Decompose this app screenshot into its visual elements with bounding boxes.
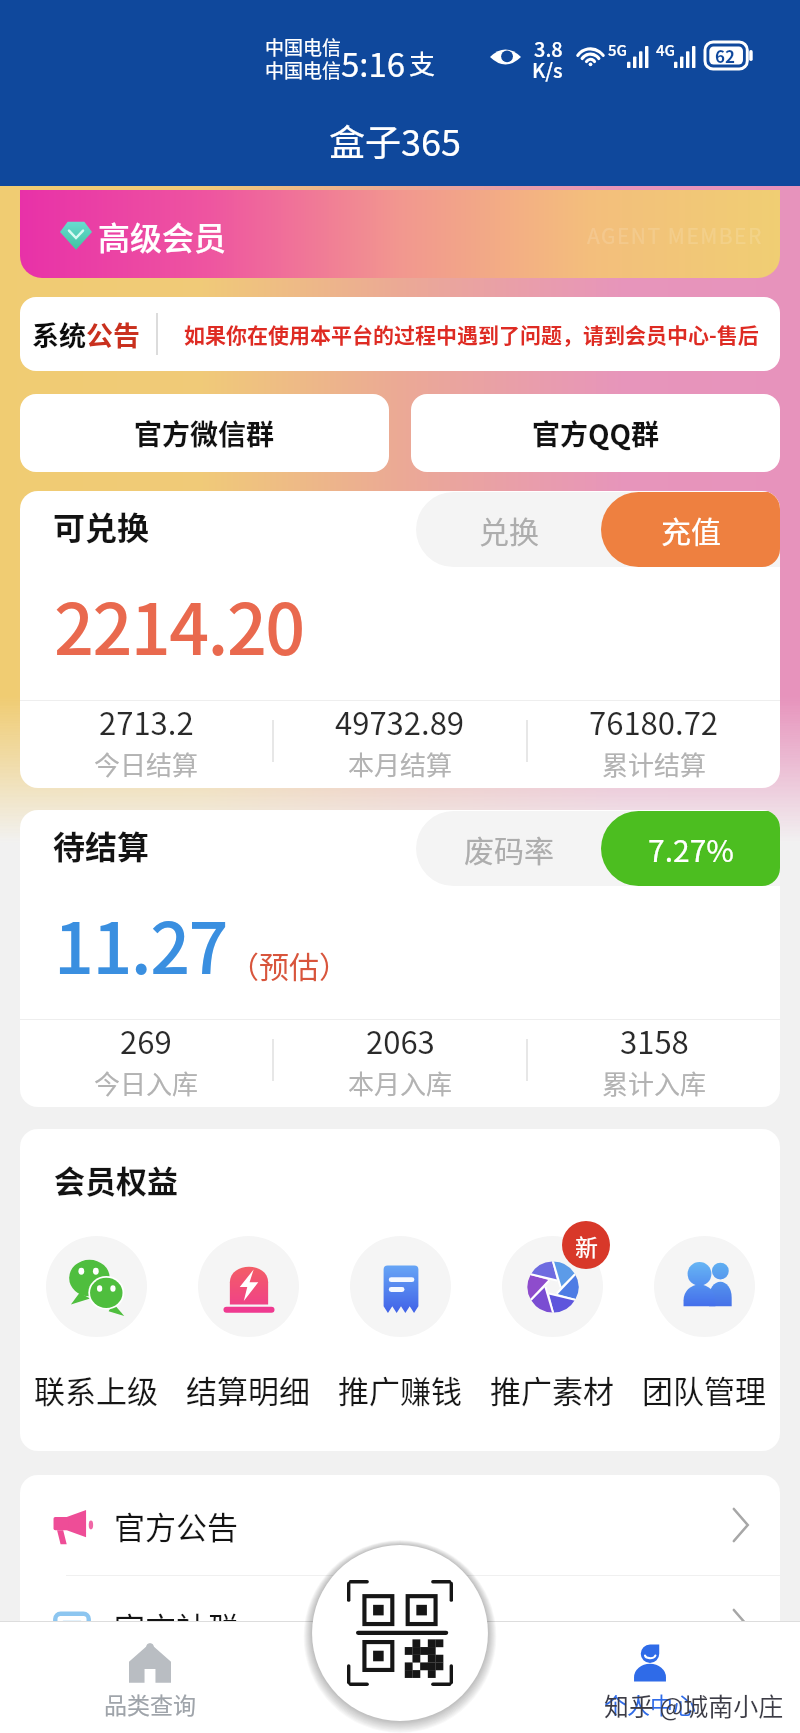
staticText: K/s bbox=[532, 55, 563, 84]
button[interactable]: 充值 bbox=[601, 492, 780, 567]
button[interactable]: 官方公告 bbox=[20, 1475, 780, 1575]
staticText: 充值 bbox=[661, 508, 721, 551]
staticText: 待结算 bbox=[53, 822, 150, 868]
staticText: 官方微信群 bbox=[134, 413, 275, 454]
staticText: AGENT MEMBER bbox=[587, 220, 763, 250]
staticText: 推广赚钱 bbox=[338, 1367, 462, 1412]
button[interactable]: 兑换 bbox=[416, 492, 601, 567]
button[interactable]: 官方社群 bbox=[20, 1576, 780, 1676]
staticText: 官方社群 bbox=[114, 1604, 238, 1649]
staticText: 今日入库 bbox=[94, 1064, 199, 1102]
staticText: 2063 bbox=[366, 1018, 435, 1063]
staticText: 如果你在使用本平台的过程中遇到了问题，请到会员中心-售后 bbox=[184, 319, 759, 349]
staticText: 2214.20 bbox=[54, 574, 304, 675]
staticText: 269 bbox=[120, 1018, 172, 1063]
staticText: 11.27 bbox=[54, 893, 227, 994]
staticText: 今日结算 bbox=[94, 745, 199, 783]
staticText: （预估） bbox=[229, 943, 349, 986]
button[interactable]: 联系上级 bbox=[20, 1221, 172, 1412]
staticText: 个人中心 bbox=[604, 1687, 696, 1720]
button[interactable]: 官方QQ群 bbox=[411, 394, 780, 472]
button[interactable]: 个人中心 bbox=[582, 1621, 718, 1733]
staticText: 本月结算 bbox=[348, 745, 453, 783]
staticText: 本月入库 bbox=[348, 1064, 453, 1102]
staticText: 支 bbox=[409, 44, 436, 82]
staticText: 官方QQ群 bbox=[532, 413, 660, 454]
button[interactable]: 团队管理 bbox=[628, 1221, 780, 1412]
staticText: 2713.2 bbox=[99, 699, 194, 744]
button[interactable]: 7.27% bbox=[601, 811, 780, 886]
staticText: 兑换 bbox=[479, 508, 539, 551]
staticText: 3.8 bbox=[534, 34, 563, 63]
staticText: 公告 bbox=[86, 315, 140, 354]
button[interactable]: 废码率 bbox=[416, 811, 601, 886]
staticText: 知乎 @城南小庄 bbox=[604, 1687, 784, 1723]
staticText: 5G bbox=[608, 39, 628, 61]
staticText: 49732.89 bbox=[335, 699, 465, 744]
button[interactable]: 高级会员 bbox=[20, 190, 780, 278]
staticText: 联系上级 bbox=[34, 1367, 158, 1412]
staticText: 会员权益 bbox=[54, 1157, 178, 1202]
staticText: 累计结算 bbox=[602, 745, 707, 783]
staticText: 76180.72 bbox=[589, 699, 719, 744]
staticText: 废码率 bbox=[464, 827, 554, 870]
staticText: 高级会员 bbox=[98, 213, 227, 259]
button[interactable]: 系统 bbox=[20, 297, 780, 371]
staticText: 推广素材 bbox=[490, 1367, 614, 1412]
staticText: 累计入库 bbox=[602, 1064, 707, 1102]
staticText: 团队管理 bbox=[642, 1367, 766, 1412]
button[interactable]: 新 bbox=[476, 1221, 628, 1412]
staticText: 中国电信 bbox=[265, 56, 342, 84]
staticText: 3158 bbox=[620, 1018, 689, 1063]
button[interactable]: 官方微信群 bbox=[20, 394, 389, 472]
staticText: 系统 bbox=[32, 315, 86, 354]
button[interactable]: 结算明细 bbox=[172, 1221, 324, 1412]
button[interactable]: 品类查询 bbox=[82, 1621, 218, 1733]
staticText: 结算明细 bbox=[186, 1367, 310, 1412]
staticText: 品类查询 bbox=[104, 1687, 196, 1720]
staticText: 盒子365 bbox=[329, 114, 461, 166]
staticText: 可兑换 bbox=[53, 503, 150, 549]
button[interactable]: 扫一扫 bbox=[308, 1541, 492, 1725]
staticText: 中国电信 bbox=[265, 33, 342, 61]
staticText: 5:16 bbox=[341, 39, 406, 87]
staticText: 62 bbox=[715, 43, 736, 68]
staticText: 4G bbox=[656, 39, 676, 61]
staticText: 新 bbox=[575, 1229, 598, 1262]
staticText: 官方公告 bbox=[114, 1503, 238, 1548]
button[interactable]: 推广赚钱 bbox=[324, 1221, 476, 1412]
staticText: 7.27% bbox=[648, 827, 734, 870]
